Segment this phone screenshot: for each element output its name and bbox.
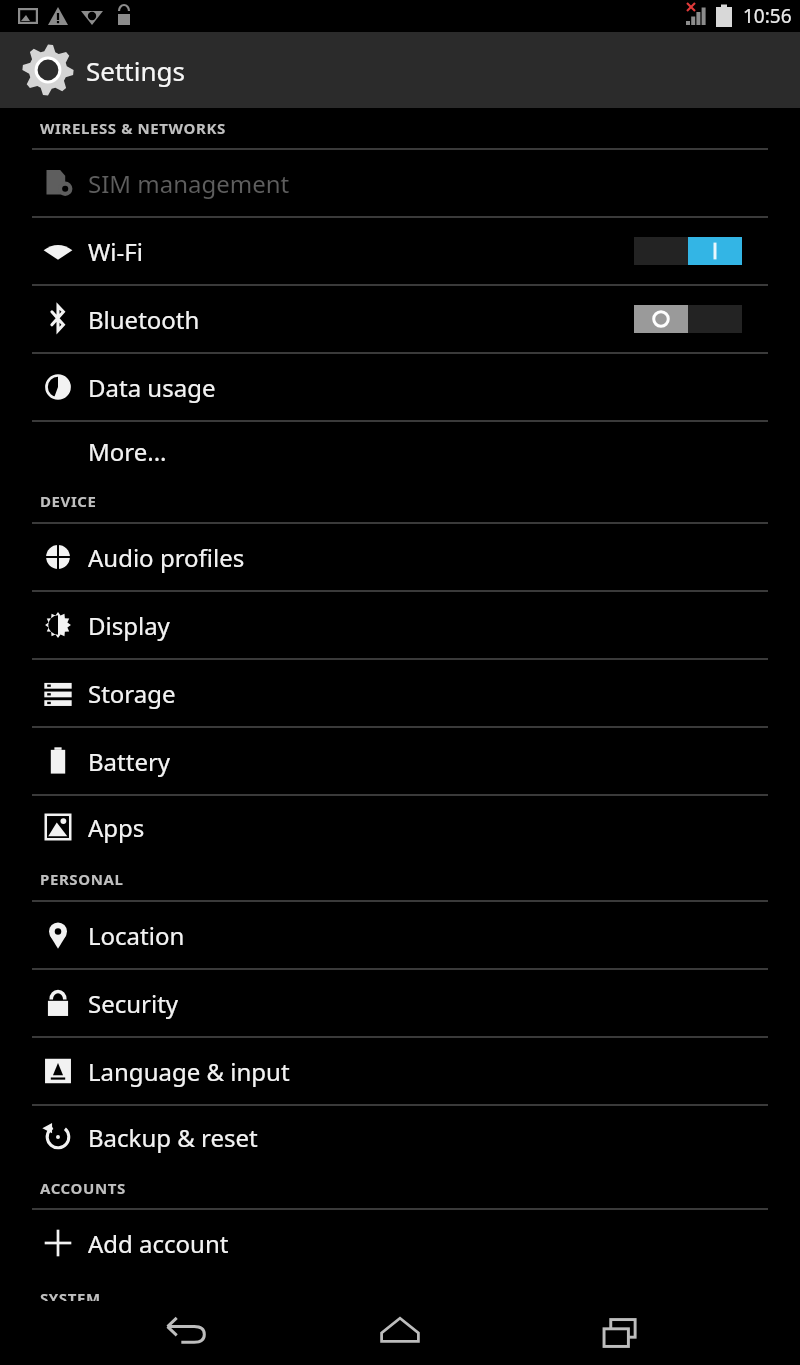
staticText: PERSONAL xyxy=(40,869,124,889)
staticText: Battery xyxy=(88,745,171,778)
staticText: Backup & reset xyxy=(88,1121,258,1154)
button[interactable]: Security xyxy=(0,970,800,1036)
button[interactable]: More... xyxy=(0,422,800,480)
staticText: WIRELESS & NETWORKS xyxy=(40,118,226,138)
staticText: More... xyxy=(88,435,167,468)
button[interactable]: Apps xyxy=(0,796,800,858)
staticText: SIM management xyxy=(88,167,290,200)
button[interactable]: Storage xyxy=(0,660,800,726)
staticText: Storage xyxy=(88,677,176,710)
button[interactable]: Data usage xyxy=(0,354,800,420)
button[interactable]: Display xyxy=(0,592,800,658)
button[interactable]: Audio profiles xyxy=(0,524,800,590)
staticText: ACCOUNTS xyxy=(40,1178,126,1198)
staticText: Audio profiles xyxy=(88,541,245,574)
button[interactable]: Back xyxy=(145,1303,225,1363)
staticText: DEVICE xyxy=(40,491,97,511)
button[interactable] xyxy=(634,237,742,265)
staticText: Add account xyxy=(88,1227,229,1260)
button[interactable]: Add account xyxy=(0,1210,800,1276)
staticText: Apps xyxy=(88,811,145,844)
staticText: Wi-Fi xyxy=(88,235,143,268)
staticText: Security xyxy=(88,987,179,1020)
button[interactable]: Language & input xyxy=(0,1038,800,1104)
button[interactable]: Backup & reset xyxy=(0,1106,800,1168)
staticText: Bluetooth xyxy=(88,303,200,336)
button[interactable]: Wi-Fi xyxy=(0,218,800,284)
staticText: Data usage xyxy=(88,371,216,404)
button[interactable]: Bluetooth xyxy=(0,286,800,352)
button[interactable]: Settings xyxy=(0,32,800,108)
button[interactable]: Location xyxy=(0,902,800,968)
staticText: Display xyxy=(88,609,170,642)
staticText: SYSTEM xyxy=(40,1288,101,1308)
staticText: Settings xyxy=(86,53,185,88)
button[interactable] xyxy=(634,305,742,333)
button[interactable]: Battery xyxy=(0,728,800,794)
staticText: 10:56 xyxy=(743,3,792,29)
button[interactable]: Home xyxy=(360,1303,440,1363)
staticText: Language & input xyxy=(88,1055,290,1088)
button[interactable]: Recent apps xyxy=(580,1303,660,1363)
staticText: Location xyxy=(88,919,185,952)
button[interactable]: SIM management xyxy=(0,150,800,216)
